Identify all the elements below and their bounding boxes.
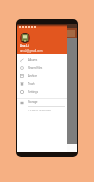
button[interactable]: Archive [17,72,67,80]
staticText: Ana Li [20,44,29,48]
staticText: Albums [28,58,38,62]
button[interactable]: Trash [17,80,67,88]
staticText: ana.li@gmail.com [20,49,43,53]
staticText: Settings [28,90,38,94]
button[interactable]: Account photo [20,33,30,43]
staticText: 1.2 GB of 15 GB used [28,109,51,112]
button[interactable]: Settings [17,88,67,96]
staticText: Shared files [28,66,43,70]
staticText: Trash [28,82,35,86]
button[interactable]: Storage [17,100,67,113]
staticText: Storage [28,100,38,104]
button[interactable]: Albums [17,56,67,64]
button[interactable]: Shared files [17,64,67,72]
staticText: Archive [28,74,37,78]
